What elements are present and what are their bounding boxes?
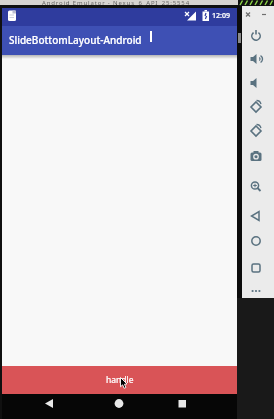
button[interactable] bbox=[245, 96, 267, 116]
staticText: SlideBottomLayout-Android bbox=[9, 33, 142, 47]
button[interactable] bbox=[245, 147, 267, 167]
button[interactable] bbox=[245, 206, 267, 226]
button[interactable] bbox=[245, 258, 267, 278]
button[interactable] bbox=[40, 395, 58, 413]
button[interactable] bbox=[245, 281, 267, 301]
button[interactable] bbox=[173, 395, 191, 413]
button[interactable] bbox=[245, 73, 267, 93]
staticText: handle bbox=[106, 374, 134, 386]
staticText: 12:09 bbox=[212, 11, 230, 21]
button[interactable] bbox=[245, 177, 267, 197]
staticText: Android Emulator - Nexus_6_API_25:5554 bbox=[42, 0, 190, 7]
button[interactable] bbox=[245, 25, 267, 45]
button[interactable] bbox=[110, 395, 128, 413]
button[interactable]: handle bbox=[2, 366, 237, 394]
button[interactable] bbox=[245, 231, 267, 251]
button[interactable] bbox=[245, 121, 267, 141]
button[interactable] bbox=[245, 49, 267, 69]
